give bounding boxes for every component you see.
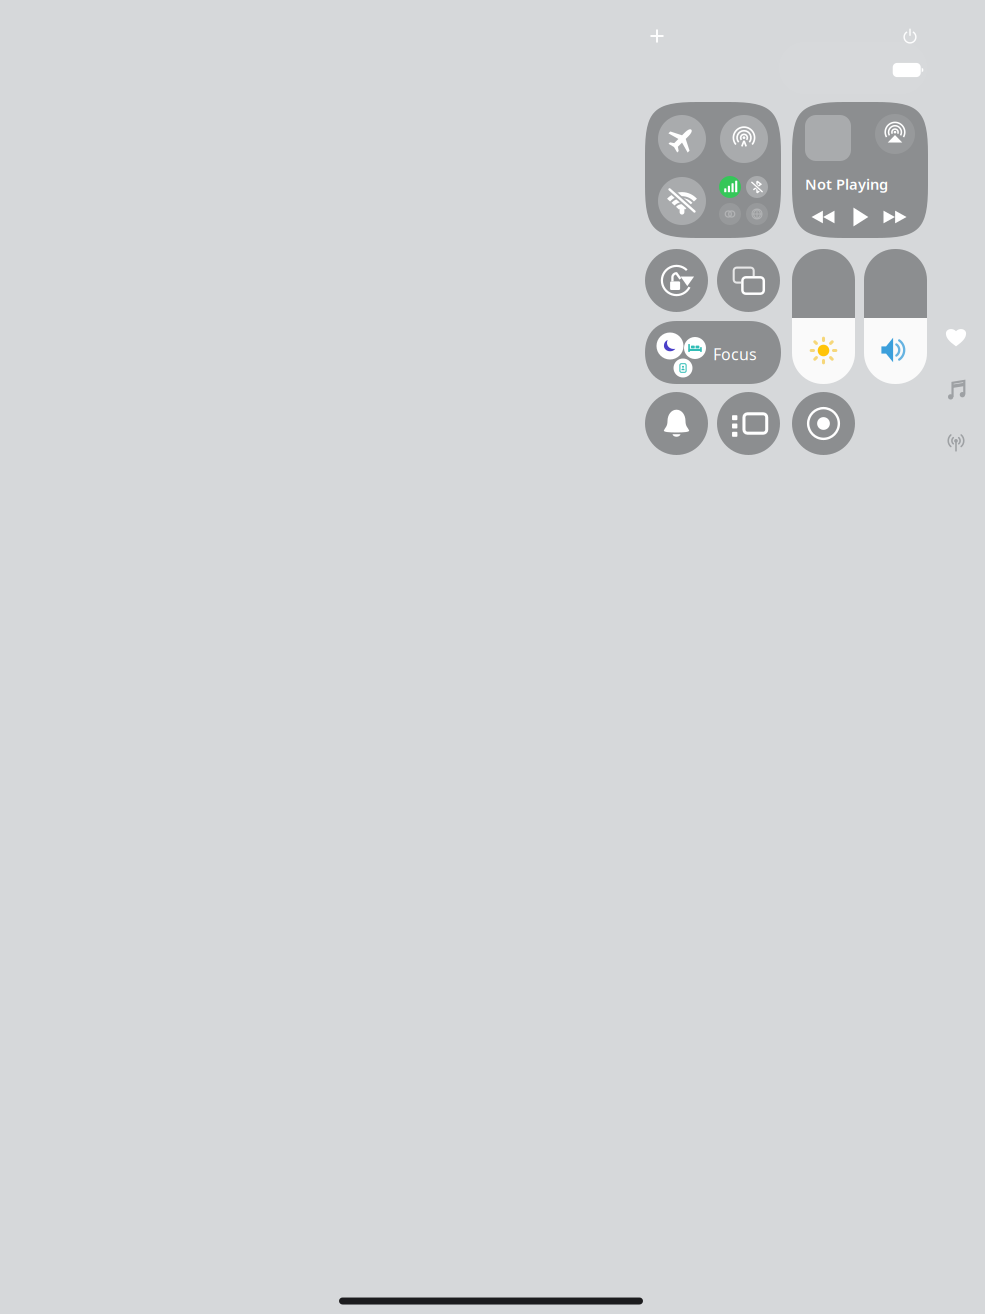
- button[interactable]: Power: [888, 14, 932, 58]
- button[interactable]: Screen Mirroring: [717, 249, 780, 312]
- button[interactable]: AirDrop: [712, 107, 776, 171]
- button[interactable]: Now Playing: [792, 102, 928, 238]
- button[interactable]: Stage Manager: [717, 392, 780, 455]
- button[interactable]: Brightness: [792, 249, 855, 384]
- button[interactable]: Focus: [645, 321, 781, 384]
- button[interactable]: VPN: [743, 200, 771, 228]
- button[interactable]: Cellular Data: [716, 173, 744, 201]
- staticText: Not Playing: [805, 174, 888, 194]
- staticText: Focus: [713, 343, 757, 365]
- button[interactable]: Screen Recording: [792, 392, 855, 455]
- button[interactable]: Silent Mode: [645, 392, 708, 455]
- button[interactable]: Bluetooth: [743, 173, 771, 201]
- button[interactable]: Personal Hotspot: [716, 200, 744, 228]
- button[interactable]: Volume: [864, 249, 927, 384]
- button[interactable]: Airplane Mode: [650, 107, 714, 171]
- button[interactable]: Health: [934, 315, 978, 359]
- button[interactable]: Music Recognition: [934, 369, 978, 413]
- button[interactable]: Rotation Lock: [645, 249, 708, 312]
- button[interactable]: Wi-Fi: [650, 169, 714, 233]
- button[interactable]: Add Controls: [635, 14, 679, 58]
- button[interactable]: Connectivity: [934, 420, 978, 464]
